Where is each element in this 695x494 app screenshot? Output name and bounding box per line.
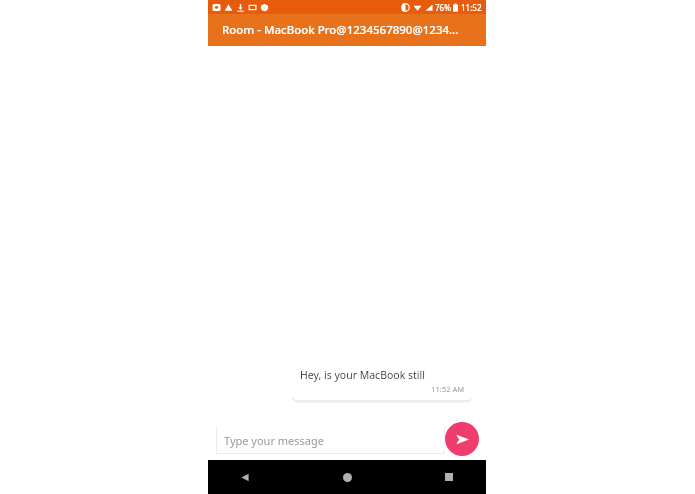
button[interactable]: Hey, is your MacBook still available?: [300, 368, 464, 394]
button[interactable]: Type your message: [216, 426, 445, 454]
button[interactable]: Room - MacBook Pro@1234567890@1234…: [208, 14, 486, 46]
staticText: 11:52 AM: [431, 384, 464, 394]
staticText: Hey, is your MacBook still available?: [300, 368, 464, 382]
button[interactable]: Home: [330, 460, 364, 494]
staticText: 11:52: [461, 2, 482, 13]
button[interactable]: Recent apps: [432, 460, 466, 494]
staticText: Type your message: [224, 433, 324, 448]
button[interactable]: Send: [445, 422, 479, 456]
button[interactable]: Back: [228, 460, 262, 494]
staticText: Room - MacBook Pro@1234567890@1234…: [222, 22, 459, 38]
staticText: 76%: [435, 2, 451, 13]
